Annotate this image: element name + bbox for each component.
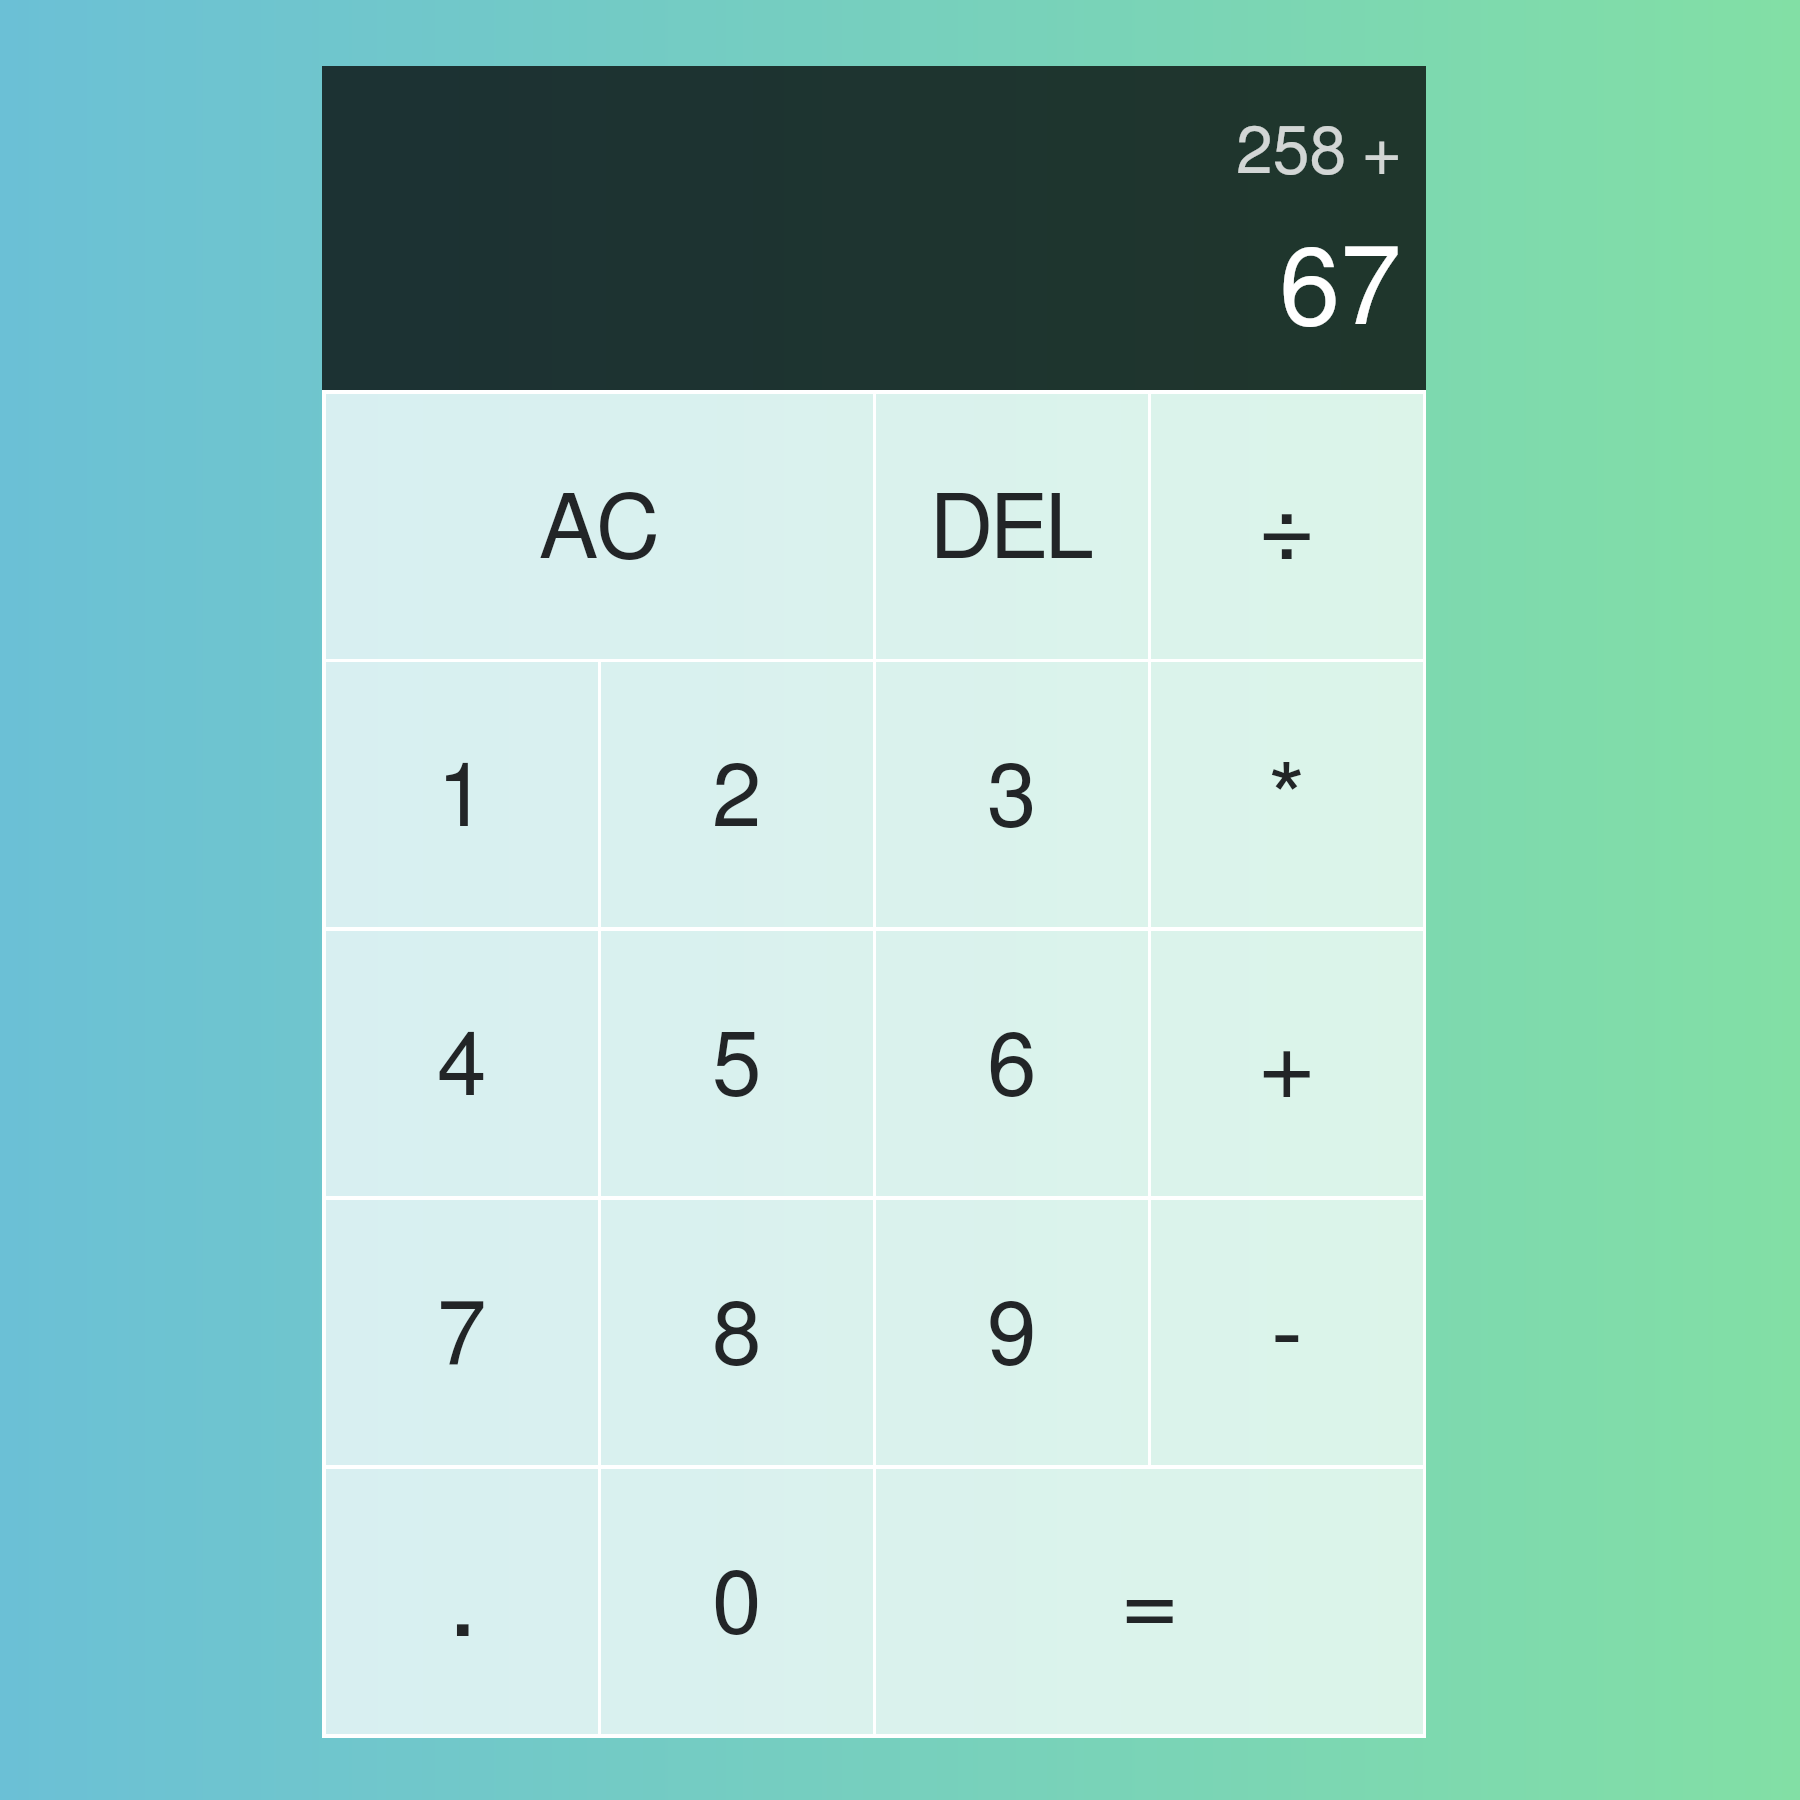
button[interactable]: Decimal point xyxy=(326,1469,598,1734)
button[interactable]: Divide xyxy=(1151,394,1423,659)
staticText: . xyxy=(448,1546,476,1658)
button[interactable]: Subtract xyxy=(1151,1200,1423,1465)
button[interactable]: 1 xyxy=(326,662,598,927)
button[interactable]: 3 xyxy=(876,662,1148,927)
button[interactable]: Delete xyxy=(876,394,1148,659)
staticText: DEL xyxy=(930,487,1095,576)
button[interactable]: 2 xyxy=(601,662,873,927)
staticText: = xyxy=(1122,1558,1178,1653)
staticText: 67 xyxy=(1279,236,1402,346)
staticText: ÷ xyxy=(1259,483,1315,578)
staticText: - xyxy=(1271,1289,1303,1384)
button[interactable]: 0 xyxy=(601,1469,873,1734)
staticText: 0 xyxy=(712,1562,762,1651)
staticText: 6 xyxy=(987,1024,1037,1113)
button[interactable]: 5 xyxy=(601,931,873,1196)
staticText: 7 xyxy=(437,1293,487,1382)
button[interactable]: 6 xyxy=(876,931,1148,1196)
button[interactable]: 8 xyxy=(601,1200,873,1465)
button[interactable]: 4 xyxy=(326,931,598,1196)
button[interactable]: 7 xyxy=(326,1200,598,1465)
button[interactable]: Multiply xyxy=(1151,662,1423,927)
staticText: 1 xyxy=(437,755,487,844)
staticText: 9 xyxy=(987,1293,1037,1382)
staticText: 4 xyxy=(437,1024,487,1113)
staticText: * xyxy=(1268,755,1306,851)
staticText: 8 xyxy=(712,1293,762,1382)
button[interactable]: Add xyxy=(1151,931,1423,1196)
button[interactable]: Equals xyxy=(876,1469,1423,1734)
staticText: AC xyxy=(539,487,660,576)
button[interactable]: 9 xyxy=(876,1200,1148,1465)
staticText: 2 xyxy=(712,755,762,844)
button[interactable]: All clear xyxy=(326,394,873,659)
staticText: 5 xyxy=(712,1024,762,1113)
staticText: + xyxy=(1259,1020,1315,1115)
staticText: 3 xyxy=(987,755,1037,844)
staticText: 258 + xyxy=(1236,120,1402,186)
